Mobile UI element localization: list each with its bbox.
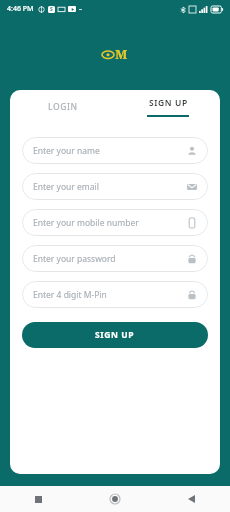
button[interactable]: Enter your name xyxy=(22,137,208,164)
staticText: SIGN UP xyxy=(149,97,188,109)
staticText: Enter 4 digit M-Pin xyxy=(33,289,187,301)
button[interactable]: SIGN UP xyxy=(22,322,208,348)
button[interactable]: Home xyxy=(76,486,153,512)
button[interactable]: Recents xyxy=(0,486,76,512)
button[interactable]: Enter your email xyxy=(22,173,208,200)
staticText: S xyxy=(50,6,53,13)
staticText: 4:46 PM xyxy=(7,4,34,14)
staticText: SIGN UP xyxy=(95,329,135,341)
staticText: LOGIN xyxy=(48,101,78,113)
button[interactable]: Enter 4 digit M-Pin xyxy=(22,281,208,308)
button[interactable]: LOGIN xyxy=(10,90,115,124)
staticText: M xyxy=(115,45,128,63)
button[interactable]: Enter your mobile number xyxy=(22,209,208,236)
staticText: Enter your name xyxy=(33,145,187,157)
staticText: Enter your password xyxy=(33,253,187,265)
staticText: Enter your email xyxy=(33,181,187,193)
button[interactable]: Back xyxy=(153,486,230,512)
staticText: Enter your mobile number xyxy=(33,217,187,229)
button[interactable]: SIGN UP xyxy=(115,90,220,124)
button[interactable]: Enter your password xyxy=(22,245,208,272)
